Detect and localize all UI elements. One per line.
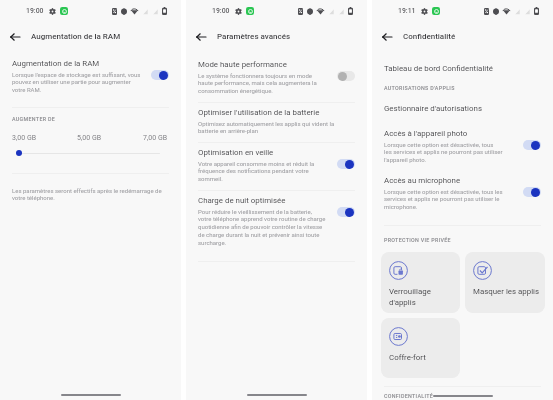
staticText: PROTECTION VIE PRIVÉE	[384, 237, 451, 243]
staticText: AUTORISATIONS D'APPLIS	[384, 85, 455, 91]
staticText: Accès au microphone	[384, 176, 461, 185]
staticText: Lorsque cette option est désactivée, tou…	[384, 188, 503, 211]
button[interactable]: Mode haute performance	[186, 60, 367, 95]
staticText: Tableau de bord Confidentialité	[384, 64, 493, 73]
button[interactable]: Optimiser l'utilisation de la batterie	[186, 108, 367, 135]
staticText: Gestionnaire d'autorisations	[384, 104, 482, 113]
staticText: Optimiser l'utilisation de la batterie	[198, 108, 320, 117]
button[interactable]: Accès à l'appareil photo	[523, 140, 541, 150]
button[interactable]: Accès au microphone	[372, 176, 553, 211]
staticText: Masquer les applis	[473, 287, 540, 296]
staticText: Coffre-fort	[389, 353, 426, 362]
button[interactable]: Accès à l'appareil photo	[372, 129, 553, 164]
staticText: Optimisez automatiquement les applis qui…	[198, 120, 335, 135]
button[interactable]: Back	[6, 28, 23, 45]
staticText: 19:11	[398, 7, 416, 15]
button[interactable]: Optimisation en veille	[337, 159, 355, 169]
staticText: Votre appareil consomme moins et réduit …	[198, 160, 315, 183]
staticText: AUGMENTER DE	[12, 116, 56, 122]
staticText: 19:00	[212, 7, 230, 15]
button[interactable]: Coffre-fort	[381, 318, 460, 378]
button[interactable]: Mode haute performance	[337, 71, 355, 81]
staticText: Les paramètres seront effectifs après le…	[12, 187, 162, 202]
staticText: Lorsque l'espace de stockage est suffisa…	[12, 71, 141, 94]
staticText: 19:00	[26, 7, 44, 15]
button[interactable]: Augmentation de la RAM	[151, 70, 169, 80]
staticText: Mode haute performance	[198, 60, 287, 69]
button[interactable]: Charge de nuit optimisée	[186, 196, 367, 247]
staticText: Confidentialité	[403, 32, 456, 41]
staticText: Pour réduire le vieillissement de la bat…	[198, 208, 326, 247]
button[interactable]: Back	[378, 28, 395, 45]
button[interactable]: Gestionnaire d'autorisations	[372, 104, 553, 113]
staticText: Charge de nuit optimisée	[198, 196, 286, 205]
staticText: Paramètres avancés	[217, 32, 291, 41]
button[interactable]: Accès au microphone	[523, 187, 541, 197]
staticText: Lorsque cette option est désactivée, tou…	[384, 141, 503, 164]
staticText: Optimisation en veille	[198, 148, 274, 157]
staticText: CONFIDENTIALITÉ	[384, 393, 434, 399]
button[interactable]: Tableau de bord Confidentialité	[372, 64, 553, 73]
staticText: Le système fonctionnera toujours en mode…	[198, 72, 317, 95]
staticText: 5,00 GB	[77, 134, 102, 142]
staticText: 7,00 GB	[143, 134, 168, 142]
staticText: Augmentation de la RAM	[31, 32, 121, 41]
button[interactable]: Augmentation de la RAM	[0, 59, 181, 94]
staticText: Augmentation de la RAM	[12, 59, 100, 68]
staticText: Accès à l'appareil photo	[384, 129, 468, 138]
button[interactable]: Verrouillage d'applis	[381, 252, 460, 313]
button[interactable]: Charge de nuit optimisée	[337, 207, 355, 217]
staticText: 3,00 GB	[12, 134, 37, 142]
button[interactable]: Back	[192, 28, 209, 45]
button[interactable]: Masquer les applis	[465, 252, 545, 313]
staticText: Verrouillage d'applis	[389, 287, 431, 307]
button[interactable]: RAM size slider	[19, 149, 160, 157]
button[interactable]: Optimisation en veille	[186, 148, 367, 183]
